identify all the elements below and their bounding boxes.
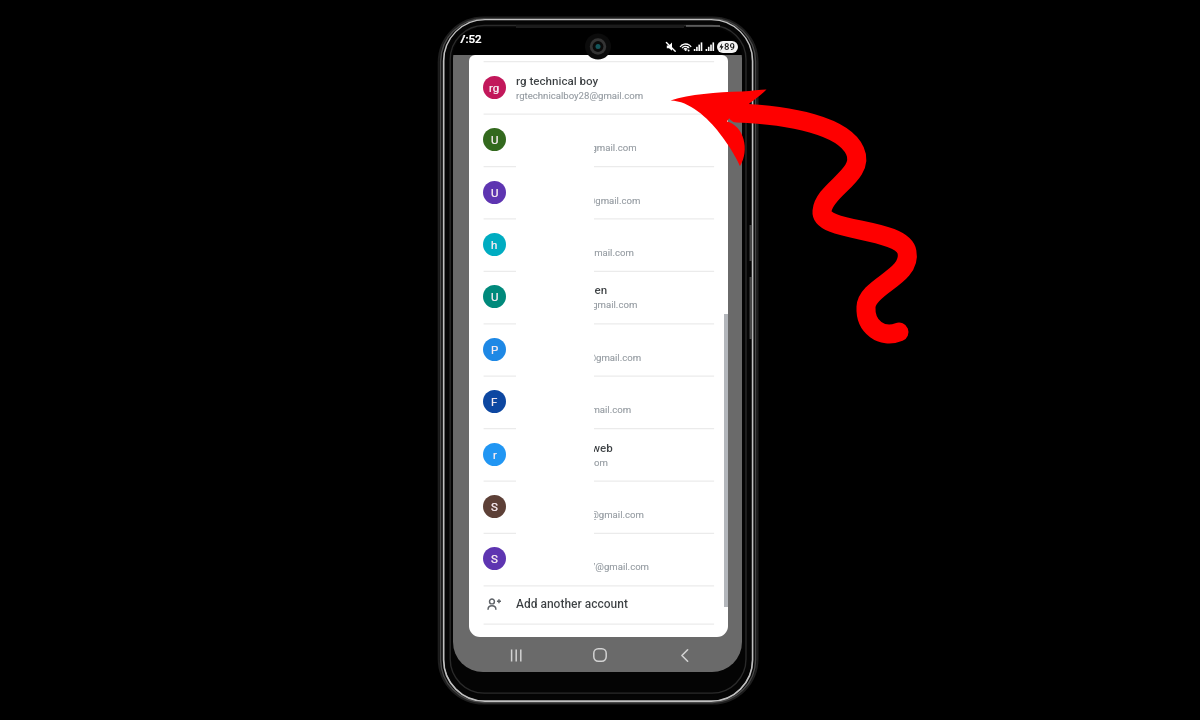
staticText: 89 [724,41,735,52]
staticText: pankajsharma19@gmail.com [516,352,642,363]
staticText: sanjayyadav19977@gmail.com [516,561,650,572]
staticText: udayshankar123@gmail.com [516,195,641,206]
staticText: firozalam5678@gmail.com [516,404,632,415]
button[interactable]: S [469,481,728,533]
staticText: sunilkumar78990@gmail.com [516,509,644,520]
staticText: U [491,133,499,146]
staticText: Uttam Kumar Sen [516,283,608,297]
button[interactable]: U [469,271,728,323]
staticText: rg [489,81,500,94]
button[interactable]: Recent apps [495,638,537,672]
staticText: rg technical boy [516,74,599,88]
staticText: harishkumar22@gmail.com [516,247,634,258]
button[interactable]: U [469,114,728,166]
staticText: U [491,186,499,199]
button[interactable]: Back [663,638,705,672]
staticText: S [491,500,498,513]
button[interactable]: F [469,376,728,428]
staticText: uttamkumarsen@gmail.com [516,299,638,310]
staticText: F [491,395,498,408]
button[interactable]: Home [579,638,621,672]
button[interactable]: Add another account [469,586,728,624]
staticText: Add another account [516,597,628,611]
button[interactable]: r [469,429,728,481]
staticText: umeshkumar28@gmail.com [516,142,637,153]
button[interactable]: U [469,167,728,219]
staticText: S [491,552,498,565]
staticText: rgtechnicalweb2.com [516,457,608,468]
staticText: U [491,290,499,303]
button[interactable]: rg [469,62,728,114]
staticText: rgtechnicalboy28@gmail.com [516,90,644,101]
staticText: r [493,448,497,461]
button[interactable]: h [469,219,728,271]
staticText: 7:52 [459,32,482,45]
staticText: P [491,343,499,356]
staticText: h [491,238,498,251]
button[interactable]: S [469,533,728,585]
staticText: rg technicalss web [516,441,613,455]
button[interactable]: P [469,324,728,376]
